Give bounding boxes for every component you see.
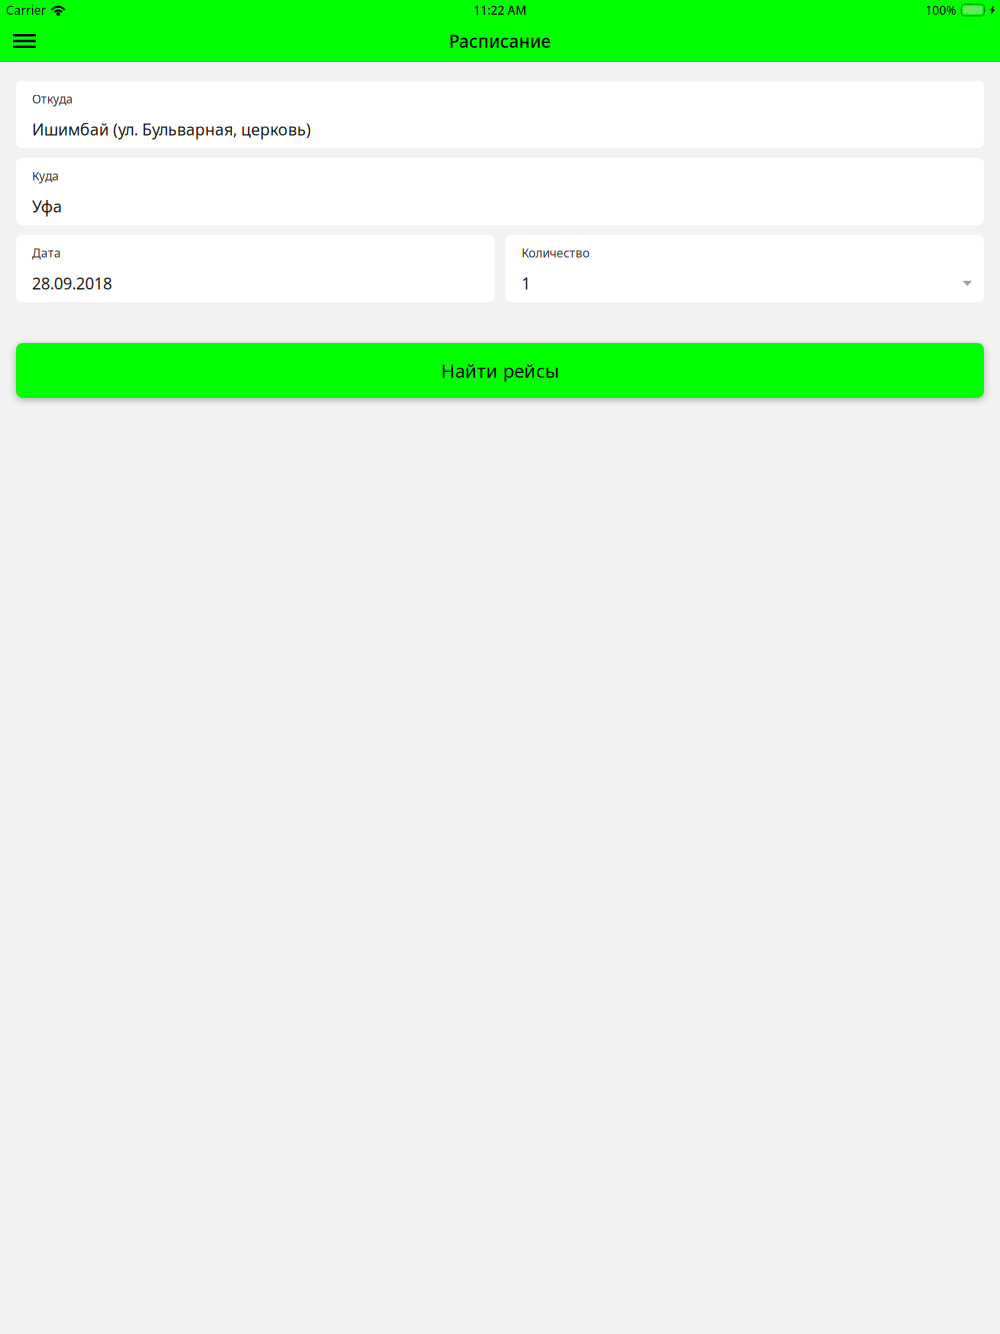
staticText: 11:22 AM bbox=[473, 2, 526, 18]
staticText: Найти рейсы bbox=[441, 358, 559, 383]
staticText: 1 bbox=[521, 273, 530, 294]
staticText: Откуда bbox=[32, 91, 73, 107]
staticText: Куда bbox=[32, 168, 59, 184]
staticText: 28.09.2018 bbox=[32, 273, 112, 294]
button[interactable]: Menu bbox=[0, 21, 50, 61]
button[interactable]: Количество bbox=[505, 235, 984, 302]
button[interactable]: Откуда bbox=[16, 81, 984, 148]
staticText: Уфа bbox=[32, 196, 62, 217]
staticText: Carrier bbox=[6, 2, 46, 18]
staticText: Ишимбай (ул. Бульварная, церковь) bbox=[32, 119, 311, 140]
staticText: 100% bbox=[925, 2, 956, 18]
staticText: Количество bbox=[521, 245, 589, 261]
button[interactable]: Найти рейсы bbox=[16, 343, 984, 398]
button[interactable]: Дата bbox=[16, 235, 494, 302]
button[interactable]: Куда bbox=[16, 158, 984, 225]
staticText: Расписание bbox=[449, 29, 551, 52]
staticText: Дата bbox=[32, 245, 61, 261]
